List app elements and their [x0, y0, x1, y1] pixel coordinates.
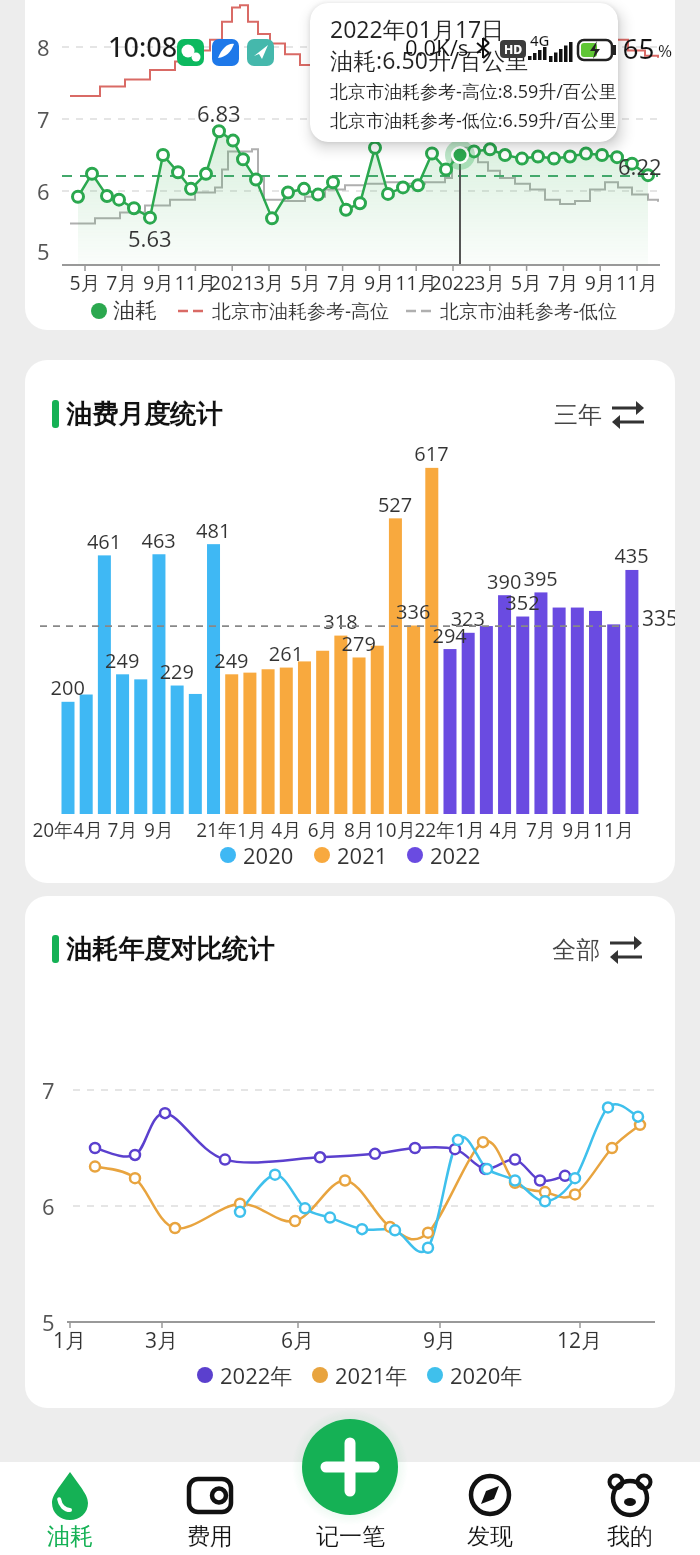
button[interactable] — [545, 390, 645, 435]
button[interactable]: 费用 — [140, 1470, 280, 1551]
button[interactable]: 我的 — [560, 1470, 700, 1551]
staticText: 记一笔 — [316, 1522, 385, 1551]
staticText: 发现 — [467, 1522, 513, 1551]
staticText: 2022年01月17日 — [330, 13, 505, 44]
staticText: 北京市油耗参考-高位:8.59升/百公里 — [330, 79, 618, 104]
button[interactable] — [545, 926, 645, 971]
button[interactable] — [302, 1419, 398, 1515]
staticText: 费用 — [187, 1522, 233, 1551]
staticText: 我的 — [607, 1522, 653, 1551]
button[interactable]: 油耗 — [0, 1470, 140, 1551]
staticText: 油耗:6.50升/百公里 — [330, 44, 529, 75]
staticText: 油耗 — [47, 1522, 93, 1551]
button[interactable]: 发现 — [420, 1470, 560, 1551]
staticText: 北京市油耗参考-低位:6.59升/百公里 — [330, 108, 618, 133]
